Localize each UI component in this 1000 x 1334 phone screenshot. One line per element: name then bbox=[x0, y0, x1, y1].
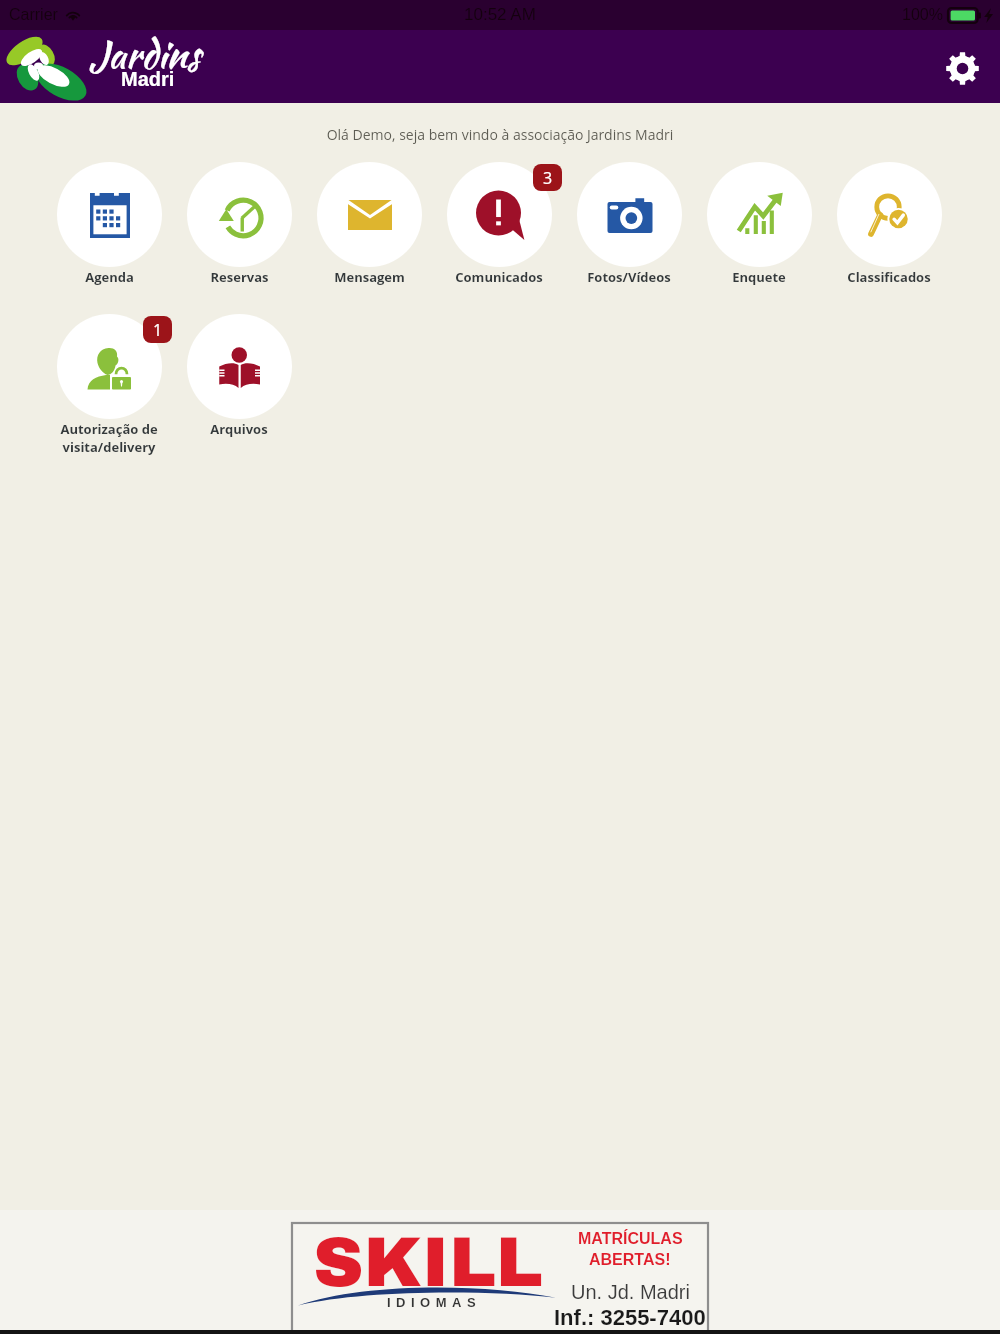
staticText: Enquete bbox=[732, 268, 786, 286]
staticText: Un. Jd. Madri bbox=[571, 1281, 690, 1303]
button[interactable]: Mensagem bbox=[304, 162, 434, 286]
button[interactable]: Comunicados bbox=[434, 162, 564, 286]
button[interactable]: Autorização de visita/delivery bbox=[44, 314, 174, 456]
staticText: Olá Demo, seja bem vindo à associação Ja… bbox=[0, 125, 1000, 144]
staticText: Mensagem bbox=[334, 268, 405, 286]
staticText: Fotos/Vídeos bbox=[587, 268, 671, 286]
staticText: 100% bbox=[902, 6, 943, 24]
staticText: Arquivos bbox=[210, 420, 268, 438]
button[interactable]: Arquivos bbox=[174, 314, 304, 438]
staticText: Agenda bbox=[85, 268, 134, 286]
button[interactable]: Settings bbox=[938, 44, 986, 92]
staticText: IDIOMAS bbox=[387, 1295, 482, 1310]
staticText: Jardins bbox=[89, 27, 201, 82]
staticText: Reservas bbox=[210, 268, 269, 286]
staticText: Autorização de visita/delivery bbox=[60, 420, 158, 456]
staticText: Inf.: 3255-7400 bbox=[554, 1305, 706, 1330]
button[interactable]: Reservas bbox=[174, 162, 304, 286]
staticText: Classificados bbox=[847, 268, 931, 286]
staticText: 10:52 AM bbox=[464, 5, 536, 24]
staticText: 1 bbox=[153, 319, 163, 341]
button[interactable]: Classificados bbox=[824, 162, 954, 286]
staticText: Comunicados bbox=[455, 268, 543, 286]
button[interactable]: Agenda bbox=[44, 162, 174, 286]
button[interactable]: Fotos/Vídeos bbox=[564, 162, 694, 286]
staticText: Carrier bbox=[9, 6, 58, 24]
staticText: 3 bbox=[543, 167, 553, 189]
staticText: MATRÍCULAS bbox=[578, 1230, 683, 1248]
button[interactable]: Enquete bbox=[694, 162, 824, 286]
button[interactable]: SKILL bbox=[292, 1223, 708, 1332]
staticText: ABERTAS! bbox=[589, 1251, 671, 1269]
staticText: SKILL bbox=[313, 1225, 543, 1301]
staticText: Madri bbox=[121, 68, 175, 90]
